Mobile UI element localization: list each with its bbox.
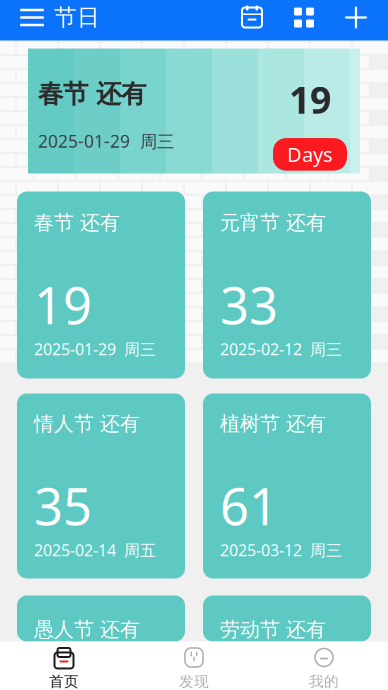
button[interactable]: 植树节 还有 xyxy=(203,393,371,578)
button[interactable]: 元宵节 还有 xyxy=(203,191,371,378)
button[interactable]: 情人节 还有 xyxy=(17,393,185,578)
staticText: 春节 还有 xyxy=(38,78,146,110)
staticText: 35 xyxy=(34,472,92,539)
button[interactable]: 劳动节 还有 xyxy=(203,595,371,641)
staticText: 2025-01-29 周三 xyxy=(34,338,156,359)
button[interactable]: 首页 xyxy=(4,641,124,690)
staticText: Days xyxy=(287,141,333,168)
staticText: 愚人节 还有 xyxy=(34,617,140,642)
staticText: 植树节 还有 xyxy=(220,411,326,436)
staticText: 劳动节 还有 xyxy=(220,617,326,642)
button[interactable]: Calendar xyxy=(226,0,278,39)
staticText: 我的 xyxy=(309,672,339,690)
staticText: 节日 xyxy=(54,4,100,31)
staticText: 情人节 还有 xyxy=(34,411,140,436)
button[interactable]: Menu xyxy=(10,0,54,39)
staticText: 元宵节 还有 xyxy=(220,210,326,235)
staticText: 33 xyxy=(220,271,278,338)
button[interactable]: 春节 还有 xyxy=(17,191,185,378)
staticText: 发现 xyxy=(179,672,209,690)
staticText: 首页 xyxy=(49,672,79,690)
staticText: 2025-03-12 周三 xyxy=(220,539,342,560)
staticText: 春节 还有 xyxy=(34,210,120,235)
button[interactable]: 发现 xyxy=(134,641,254,690)
button[interactable]: 春节 还有 xyxy=(17,48,371,173)
staticText: 2025-02-14 周五 xyxy=(34,539,156,560)
staticText: 19 xyxy=(289,74,331,124)
staticText: 2025-02-12 周三 xyxy=(220,338,342,359)
staticText: 2025-01-29 周三 xyxy=(38,130,174,153)
button[interactable]: 愚人节 还有 xyxy=(17,595,185,641)
button[interactable]: 节日 xyxy=(54,0,108,43)
button[interactable]: Grid view xyxy=(278,0,330,39)
staticText: 61 xyxy=(220,472,278,539)
button[interactable]: 我的 xyxy=(264,641,384,690)
button[interactable]: Add xyxy=(330,0,382,39)
staticText: 19 xyxy=(34,271,92,338)
